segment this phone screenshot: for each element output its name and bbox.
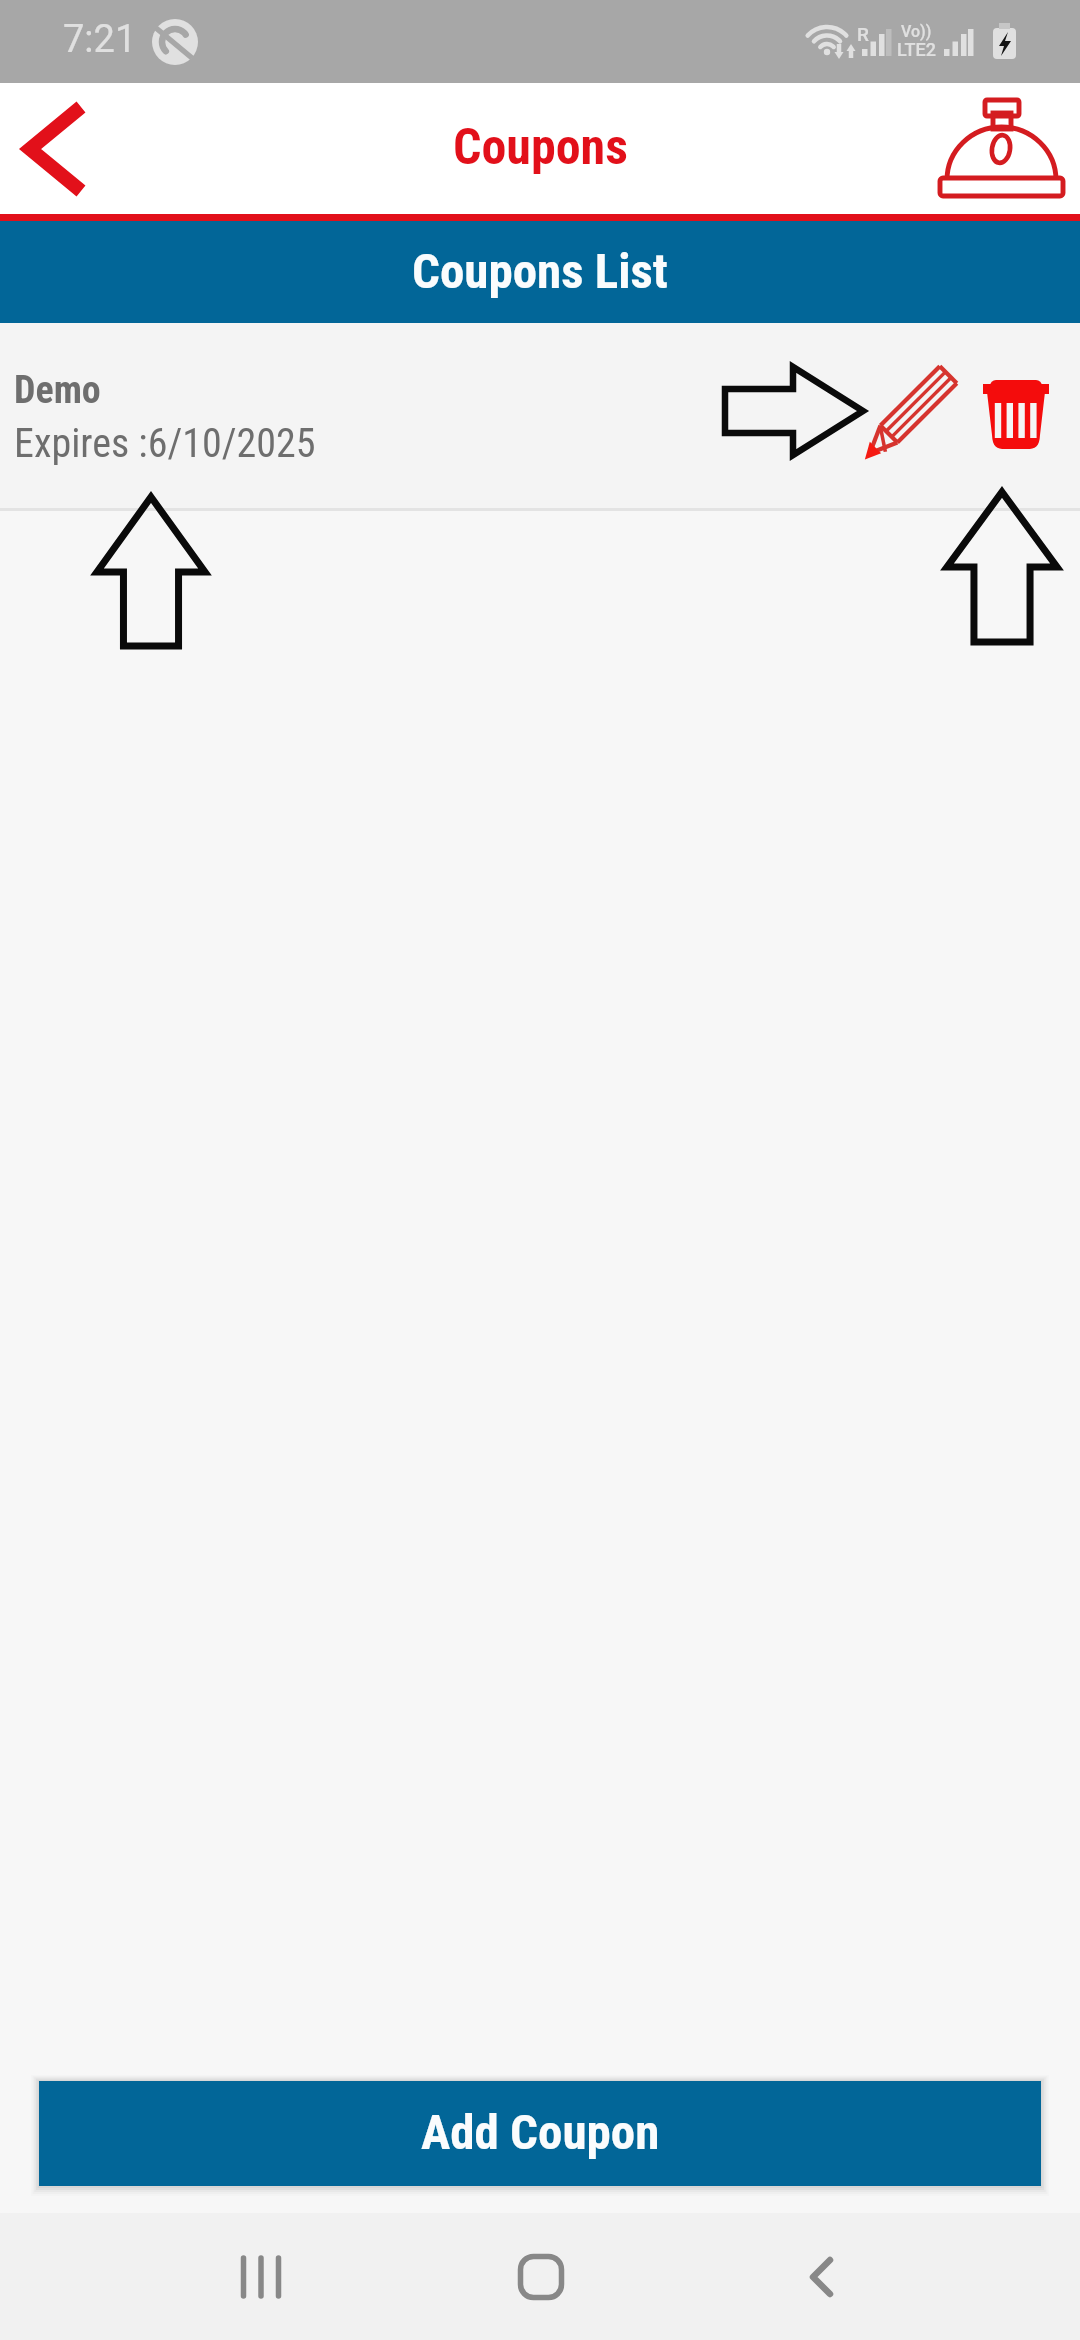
button[interactable]: Orders — [930, 83, 1080, 214]
staticText: Coupons — [453, 118, 628, 177]
staticText: LTE2 — [897, 39, 936, 60]
button[interactable]: Home — [481, 2217, 601, 2337]
staticText: Demo — [14, 368, 101, 413]
staticText: Expires :6/10/2025 — [14, 420, 316, 467]
button[interactable]: Back — [762, 2217, 882, 2337]
staticText: R — [857, 23, 869, 45]
staticText: Coupons List — [412, 243, 668, 300]
button[interactable]: Demo — [0, 323, 1080, 511]
staticText: Add Coupon — [421, 2104, 660, 2161]
button[interactable]: Add Coupon — [39, 2081, 1041, 2186]
button[interactable]: Back — [0, 83, 120, 214]
staticText: Vo)) — [901, 22, 932, 41]
button[interactable]: Recents — [199, 2217, 319, 2337]
staticText: 7:21 — [63, 17, 137, 62]
button[interactable]: Delete — [974, 366, 1066, 458]
button[interactable]: Edit — [843, 350, 973, 480]
